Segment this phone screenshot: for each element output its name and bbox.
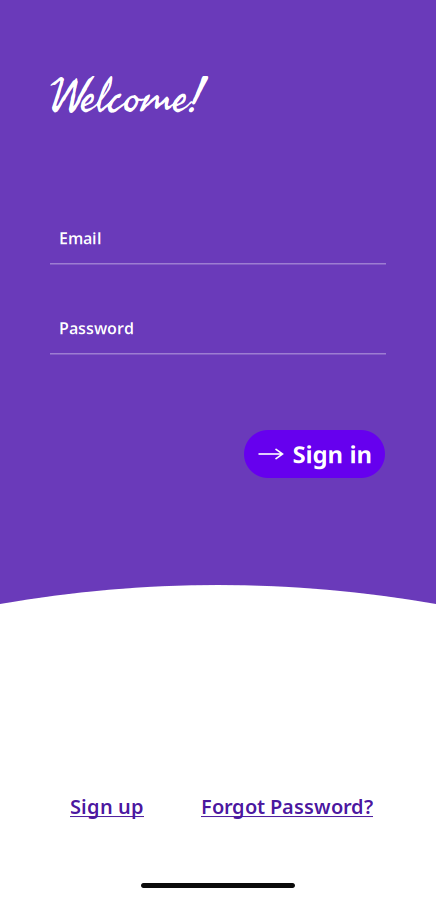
staticText: Password [59, 317, 134, 339]
staticText: Forgot Password? [201, 793, 373, 820]
button[interactable]: Email [50, 229, 386, 264]
button[interactable]: Sign in [244, 430, 385, 478]
button[interactable]: Password [50, 319, 386, 354]
button[interactable]: Forgot Password? [201, 789, 373, 824]
staticText: Email [59, 227, 102, 249]
staticText: Sign up [70, 793, 144, 820]
staticText: Sign in [292, 438, 372, 470]
staticText: Welcome! [50, 54, 203, 138]
button[interactable]: Sign up [70, 789, 144, 824]
